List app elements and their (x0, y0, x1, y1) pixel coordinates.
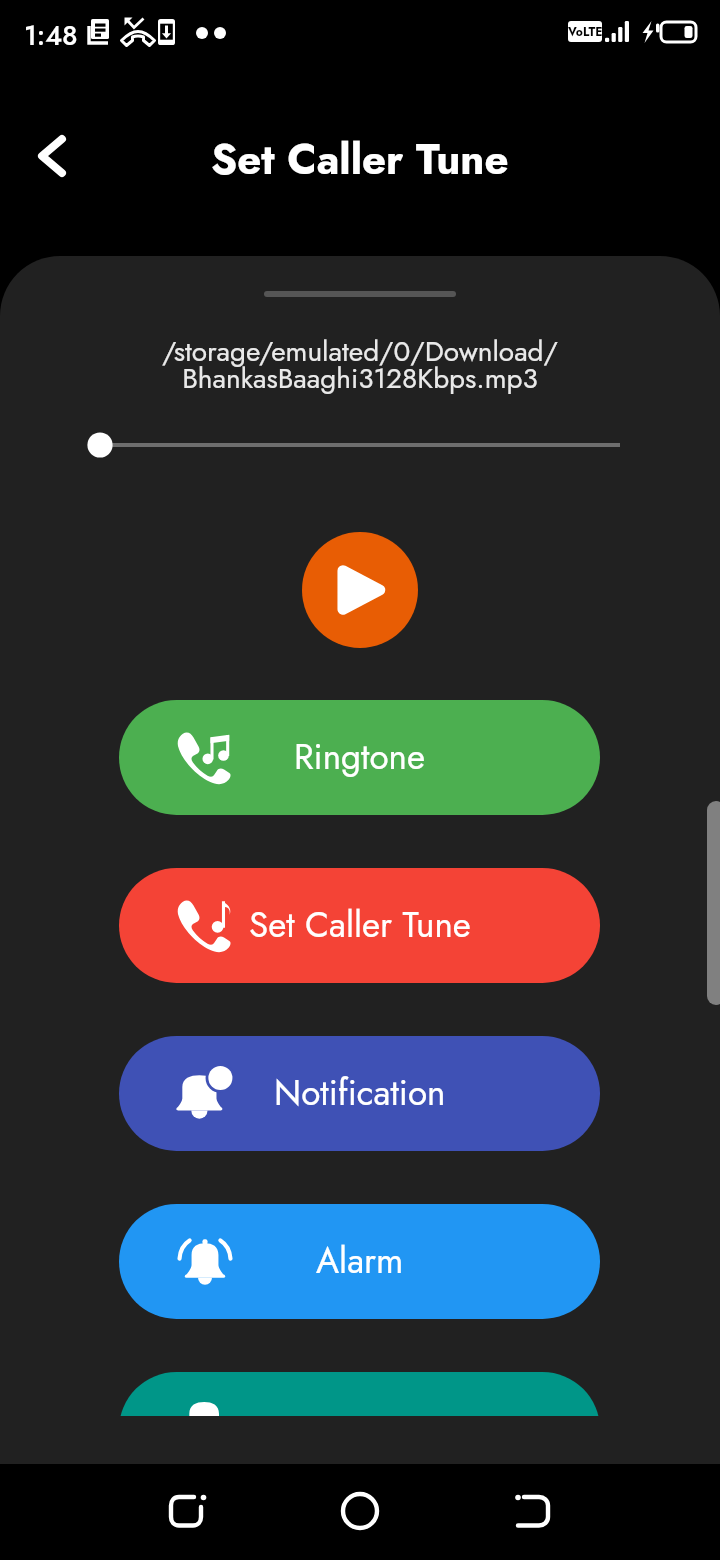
button[interactable]: Play (302, 532, 418, 648)
staticText: Notification (274, 1068, 446, 1119)
button[interactable]: Alarm (119, 1204, 600, 1319)
staticText: 1:48 (24, 16, 78, 55)
button[interactable]: Back (20, 123, 86, 189)
button[interactable]: Ringtone (119, 700, 600, 815)
button[interactable]: Back (493, 1471, 573, 1551)
button[interactable]: Set Caller Tune (119, 868, 600, 983)
staticText: Ringtone (294, 732, 425, 783)
button[interactable]: Recents (146, 1471, 226, 1551)
staticText: Set Caller Tune (249, 900, 471, 951)
staticText: /storage/emulated/0/Download/ BhankasBaa… (0, 331, 720, 398)
button[interactable]: Vibration (119, 1372, 600, 1416)
staticText: VoLTE (568, 23, 602, 40)
staticText: Set Caller Tune (211, 129, 509, 190)
button[interactable]: Notification (119, 1036, 600, 1151)
staticText: Alarm (316, 1236, 404, 1287)
button[interactable]: Home (320, 1471, 400, 1551)
